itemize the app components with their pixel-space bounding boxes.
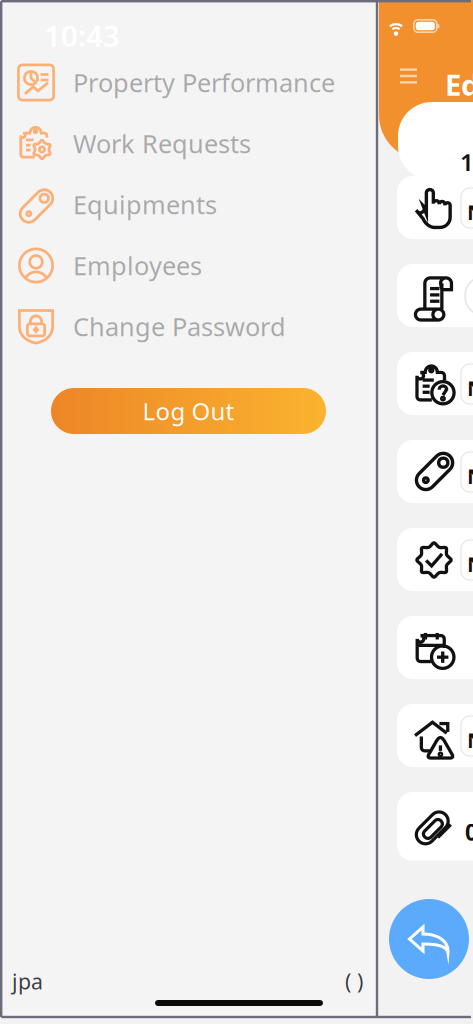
button[interactable]: Equipments [17,174,372,235]
staticText: Edit [445,65,473,104]
staticText: jpa [12,967,43,995]
button[interactable]: Menu [399,68,421,84]
staticText: 11 [460,146,473,178]
staticText: Property Performance [73,66,335,99]
staticText: N [467,462,473,490]
staticText: 10:43 [44,16,120,55]
button[interactable]: N [397,176,473,239]
staticText: N [467,374,473,402]
button[interactable]: Work Requests [17,113,372,174]
staticText: Equipments [73,188,217,221]
staticText: Change Password [73,310,286,343]
button[interactable] [397,264,473,327]
button[interactable]: Property Performance [17,52,372,113]
button[interactable]: N [397,528,473,591]
button[interactable]: N [397,352,473,415]
staticText: ( ) [345,967,363,995]
staticText: N [467,198,473,226]
button[interactable]: N [397,704,473,767]
button[interactable]: Employees [17,235,372,296]
staticText: Employees [73,249,202,282]
staticText: Work Requests [73,127,251,160]
staticText: 0/ [465,817,473,847]
button[interactable]: 0/ [397,792,473,861]
button[interactable]: Change Password [17,296,372,357]
button[interactable] [397,616,473,679]
button[interactable]: Back [389,899,469,979]
staticText: Log Out [142,395,234,427]
button[interactable]: N [397,440,473,503]
staticText: N [467,550,473,578]
staticText: N [467,726,473,754]
button[interactable]: Log Out [51,388,326,434]
